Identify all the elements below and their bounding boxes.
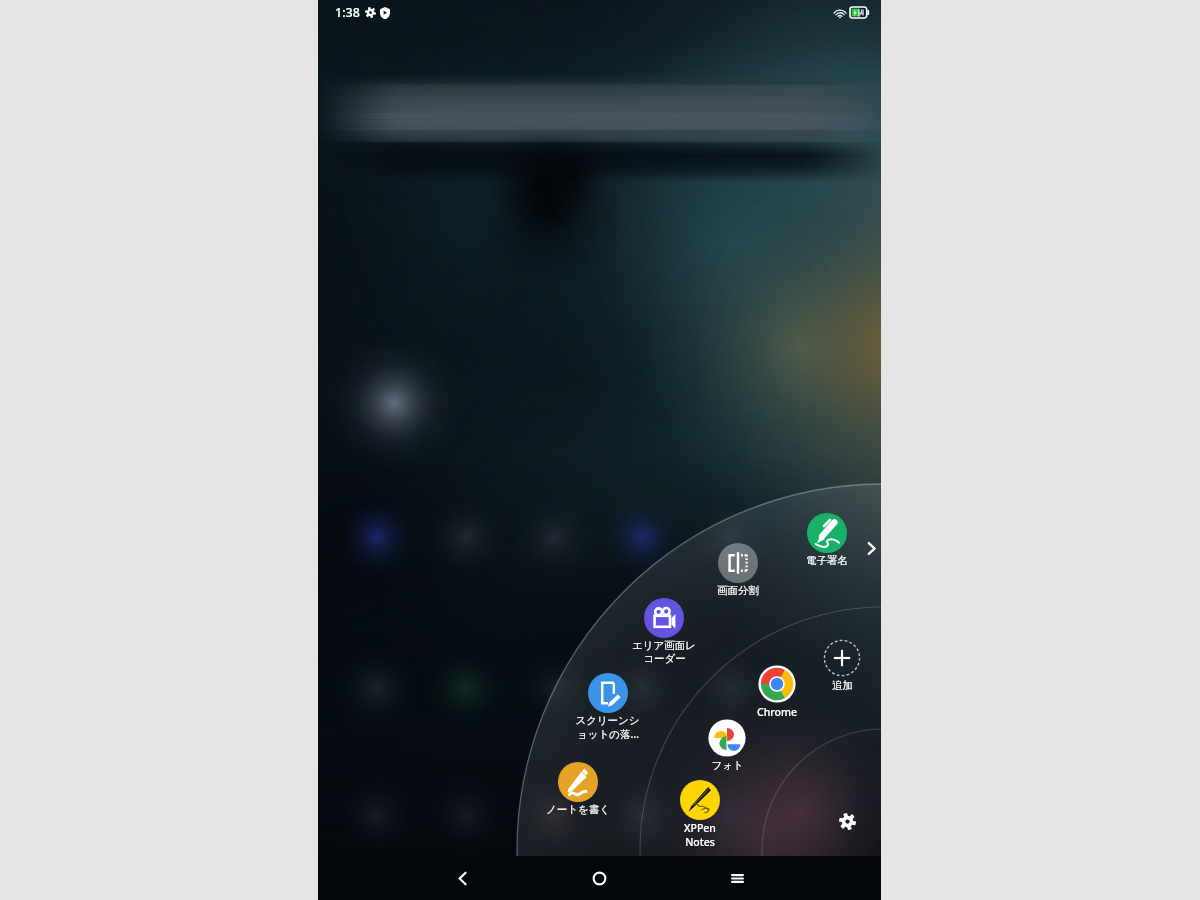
button[interactable]: 追加 xyxy=(796,638,881,692)
button[interactable]: Chrome xyxy=(731,664,823,719)
staticText: Chrome xyxy=(757,705,797,719)
staticText: フォト xyxy=(711,759,744,772)
button[interactable]: Settings xyxy=(833,807,861,835)
button[interactable]: ノートを書く xyxy=(532,762,624,816)
button[interactable]: フォト xyxy=(681,718,773,772)
button[interactable]: Back xyxy=(442,858,482,898)
button[interactable]: XPPen xyxy=(654,780,746,849)
button[interactable]: スクリーンシ xyxy=(561,673,653,741)
button[interactable]: 画面分割 xyxy=(692,543,784,597)
staticText: Notes xyxy=(685,835,715,849)
staticText: ノートを書く xyxy=(546,803,610,816)
button[interactable]: Recents xyxy=(717,858,757,898)
staticText: ョットの落… xyxy=(577,727,639,741)
staticText: 電子署名 xyxy=(806,554,848,567)
staticText: 画面分割 xyxy=(717,584,759,597)
staticText: 1:38 xyxy=(335,4,360,21)
staticText: XPPen xyxy=(684,821,716,835)
button[interactable]: Next page xyxy=(860,537,881,559)
staticText: コーダー xyxy=(643,652,686,665)
button[interactable]: エリア画面レ xyxy=(618,598,710,665)
staticText: スクリーンシ xyxy=(575,714,640,727)
staticText: 追加 xyxy=(832,679,853,692)
button[interactable]: Home xyxy=(579,858,619,898)
button[interactable]: 電子署名 xyxy=(781,513,873,567)
staticText: エリア画面レ xyxy=(632,639,696,652)
